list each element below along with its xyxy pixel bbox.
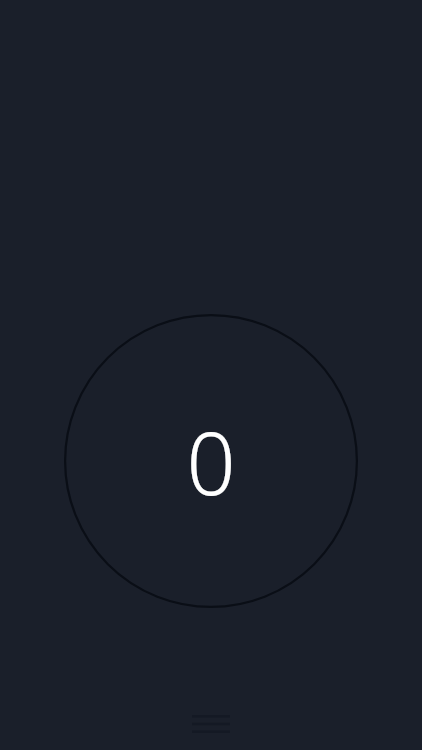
button[interactable]: Timer dial	[64, 314, 358, 608]
staticText: 0	[186, 403, 236, 520]
